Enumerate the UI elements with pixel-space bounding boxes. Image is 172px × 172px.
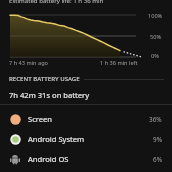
- staticText: 7h 42m 31s on battery: [9, 90, 90, 100]
- staticText: 1 h 36 min left: [100, 59, 138, 67]
- staticText: Android System: [28, 134, 85, 144]
- staticText: 50%: [150, 33, 162, 41]
- button[interactable]: Screen: [0, 109, 172, 129]
- button[interactable]: Android System: [0, 129, 172, 149]
- staticText: 6%: [153, 155, 162, 164]
- staticText: RECENT BATTERY USAGE: [9, 74, 80, 82]
- staticText: Android OS: [28, 154, 69, 164]
- staticText: Estimated battery life: 1 h 36 min: [9, 0, 104, 4]
- staticText: 0%: [151, 52, 159, 60]
- staticText: 100%: [148, 12, 163, 20]
- staticText: 7 h 43 min ago: [9, 59, 48, 67]
- staticText: 9%: [153, 135, 162, 144]
- staticText: 36%: [149, 115, 162, 124]
- button[interactable]: Android OS: [0, 149, 172, 169]
- staticText: Screen: [28, 114, 53, 124]
